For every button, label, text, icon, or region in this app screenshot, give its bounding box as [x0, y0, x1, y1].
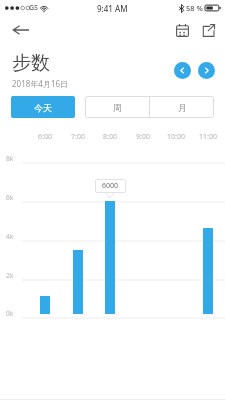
button[interactable]: Back	[6, 17, 36, 43]
staticText: 58 %	[186, 3, 203, 13]
staticText: GS	[29, 3, 38, 13]
staticText: 7:00	[62, 132, 94, 142]
staticText: 步数	[12, 51, 50, 75]
staticText: 11:00	[192, 132, 224, 142]
staticText: 6:00	[29, 132, 61, 142]
button[interactable]: Share	[197, 19, 219, 41]
button[interactable]: 月	[150, 96, 214, 118]
staticText: 0k	[6, 309, 14, 318]
staticText: 9:00	[127, 132, 159, 142]
staticText: 6k	[6, 193, 14, 202]
button[interactable]: 周	[85, 96, 149, 118]
button[interactable]: Calendar	[171, 19, 193, 41]
button[interactable]: Previous day	[174, 62, 191, 79]
button[interactable]: Next day	[198, 62, 215, 79]
staticText: 月	[178, 102, 187, 113]
staticText: 8:00	[94, 132, 126, 142]
staticText: 今天	[34, 102, 52, 113]
button[interactable]: 今天	[11, 96, 75, 118]
staticText: 9:41 AM	[97, 3, 128, 14]
staticText: 4k	[6, 232, 14, 241]
staticText: 周	[113, 102, 122, 113]
staticText: 2018年4月16日	[12, 78, 69, 89]
staticText: 8k	[6, 154, 14, 163]
staticText: 10:00	[160, 132, 192, 142]
staticText: 6000	[102, 181, 119, 191]
staticText: 2k	[6, 271, 14, 280]
